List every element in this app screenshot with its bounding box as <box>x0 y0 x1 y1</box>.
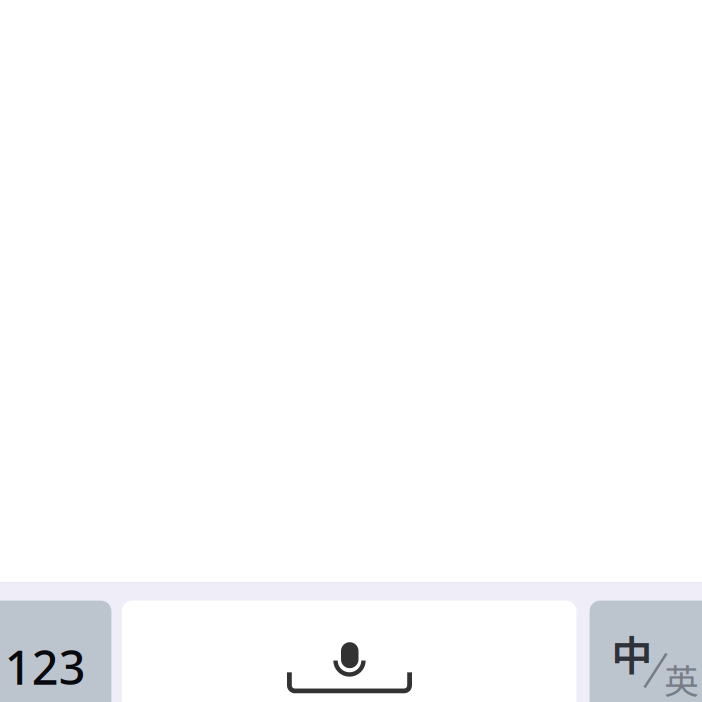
button[interactable]: 中 <box>590 601 702 702</box>
staticText: 中 <box>611 623 652 682</box>
button[interactable]: Space <box>122 601 576 702</box>
staticText: 英 <box>664 654 699 702</box>
staticText: 123 <box>5 635 86 698</box>
button[interactable]: 123 <box>0 601 111 702</box>
